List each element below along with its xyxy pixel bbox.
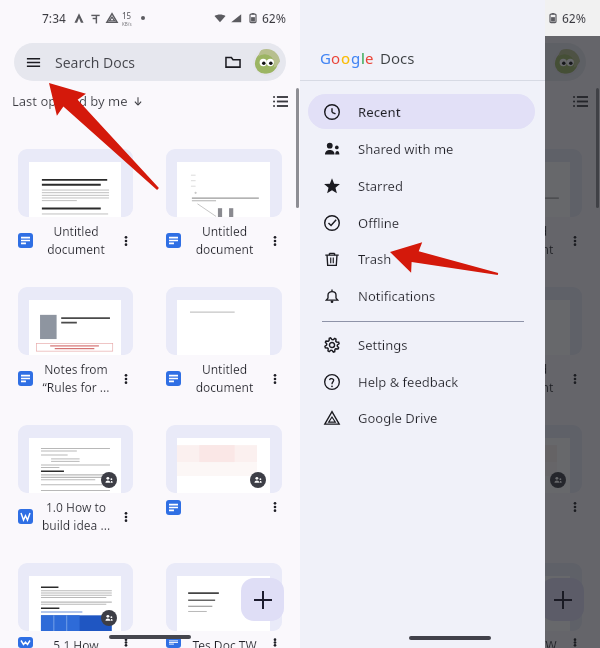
staticText: Last opened by me — [312, 92, 428, 110]
button[interactable]: Starred — [308, 168, 535, 203]
button[interactable]: More options — [568, 372, 582, 386]
staticText: Recent — [358, 103, 401, 121]
button[interactable]: Settings — [308, 327, 535, 362]
button[interactable]: Help & feedback — [308, 364, 535, 399]
staticText: Shared with me — [358, 140, 454, 158]
button[interactable]: Switch to list view — [573, 94, 588, 109]
button[interactable]: Tes Doc TW — [166, 563, 282, 648]
button[interactable]: 1.0 How to build idea ... — [18, 425, 133, 534]
staticText: Notes from “Rules for ... — [33, 361, 119, 396]
button[interactable]: Recent — [308, 94, 535, 129]
staticText: Untitled document — [181, 223, 268, 258]
button[interactable]: More options — [119, 637, 133, 648]
staticText: KB/s — [122, 21, 132, 27]
staticText: 5.1 How — [33, 637, 119, 648]
staticText: Notifications — [358, 287, 436, 305]
staticText: Untitled document — [333, 223, 419, 258]
staticText: G — [320, 48, 331, 68]
staticText: 5.1 How — [333, 637, 419, 648]
button[interactable]: 5.1 How — [18, 563, 133, 648]
button[interactable]: Last opened by me — [12, 92, 144, 110]
staticText: 62% — [262, 10, 286, 26]
staticText — [481, 499, 568, 515]
button[interactable]: Account — [253, 49, 280, 76]
button[interactable]: Account — [553, 49, 580, 76]
staticText: e — [365, 48, 374, 68]
button[interactable]: Tes Doc TW — [466, 563, 582, 648]
button[interactable]: Notes from “Rules for ... — [318, 287, 433, 396]
button[interactable]: Untitled document — [166, 149, 282, 258]
button[interactable]: Untitled document — [318, 149, 433, 258]
button[interactable]: Untitled document — [466, 287, 582, 396]
button[interactable]: More options — [268, 500, 282, 514]
button[interactable]: Create new document — [541, 578, 584, 621]
staticText: o — [341, 48, 351, 68]
button[interactable]: 5.1 How — [318, 563, 433, 648]
staticText: Tes Doc TW — [181, 637, 268, 648]
button[interactable]: Notes from “Rules for ... — [18, 287, 133, 396]
button[interactable]: More options — [119, 372, 133, 386]
staticText: 62% — [562, 10, 586, 26]
button[interactable]: Untitled document — [166, 287, 282, 396]
button[interactable]: More options — [419, 637, 433, 648]
staticText: g — [351, 48, 361, 68]
button[interactable]: More options — [466, 425, 582, 515]
staticText: Search Docs — [55, 53, 136, 72]
button[interactable]: Open navigation drawer — [14, 43, 286, 81]
staticText: 7:34 — [42, 10, 66, 26]
button[interactable]: More options — [268, 372, 282, 386]
button[interactable]: More options — [568, 500, 582, 514]
button[interactable]: Open navigation drawer — [314, 43, 586, 81]
button[interactable]: More options — [119, 510, 133, 524]
button[interactable]: Google Drive — [308, 400, 535, 435]
staticText: l — [361, 48, 365, 68]
button[interactable]: More options — [419, 372, 433, 386]
staticText: Help & feedback — [358, 373, 459, 391]
staticText: Notes from “Rules for ... — [333, 361, 419, 396]
button[interactable]: More options — [419, 234, 433, 248]
other: Folders — [225, 54, 241, 70]
staticText: Settings — [358, 336, 408, 354]
button[interactable]: Create new document — [241, 578, 284, 621]
button[interactable]: Offline — [308, 205, 535, 240]
other: Open navigation drawer — [326, 55, 341, 70]
staticText: Untitled document — [481, 223, 568, 258]
button[interactable]: More options — [268, 637, 282, 648]
staticText: Untitled document — [481, 361, 568, 396]
button[interactable]: Shared with me — [308, 131, 535, 166]
button[interactable]: More options — [568, 637, 582, 648]
staticText: 15 — [122, 10, 132, 21]
staticText: Untitled document — [181, 361, 268, 396]
button[interactable]: More options — [119, 234, 133, 248]
button[interactable]: Notifications — [308, 278, 535, 313]
button[interactable]: Switch to list view — [273, 94, 288, 109]
button[interactable]: Last opened by me — [312, 92, 444, 110]
staticText: Search Docs — [355, 53, 436, 72]
button[interactable]: More options — [268, 234, 282, 248]
staticText: Tes Doc TW — [481, 637, 568, 648]
button[interactable]: Untitled document — [466, 149, 582, 258]
staticText: Google Drive — [358, 409, 438, 427]
staticText: Offline — [358, 214, 400, 232]
staticText: Untitled document — [33, 223, 119, 258]
staticText: Last opened by me — [12, 92, 128, 110]
other: Open navigation drawer — [26, 55, 41, 70]
button[interactable]: Trash — [308, 241, 535, 276]
button[interactable]: More options — [166, 425, 282, 515]
button[interactable]: Untitled document — [18, 149, 133, 258]
staticText: o — [331, 48, 341, 68]
button[interactable]: More options — [568, 234, 582, 248]
staticText: 62% — [562, 10, 586, 26]
staticText: Trash — [358, 250, 392, 268]
